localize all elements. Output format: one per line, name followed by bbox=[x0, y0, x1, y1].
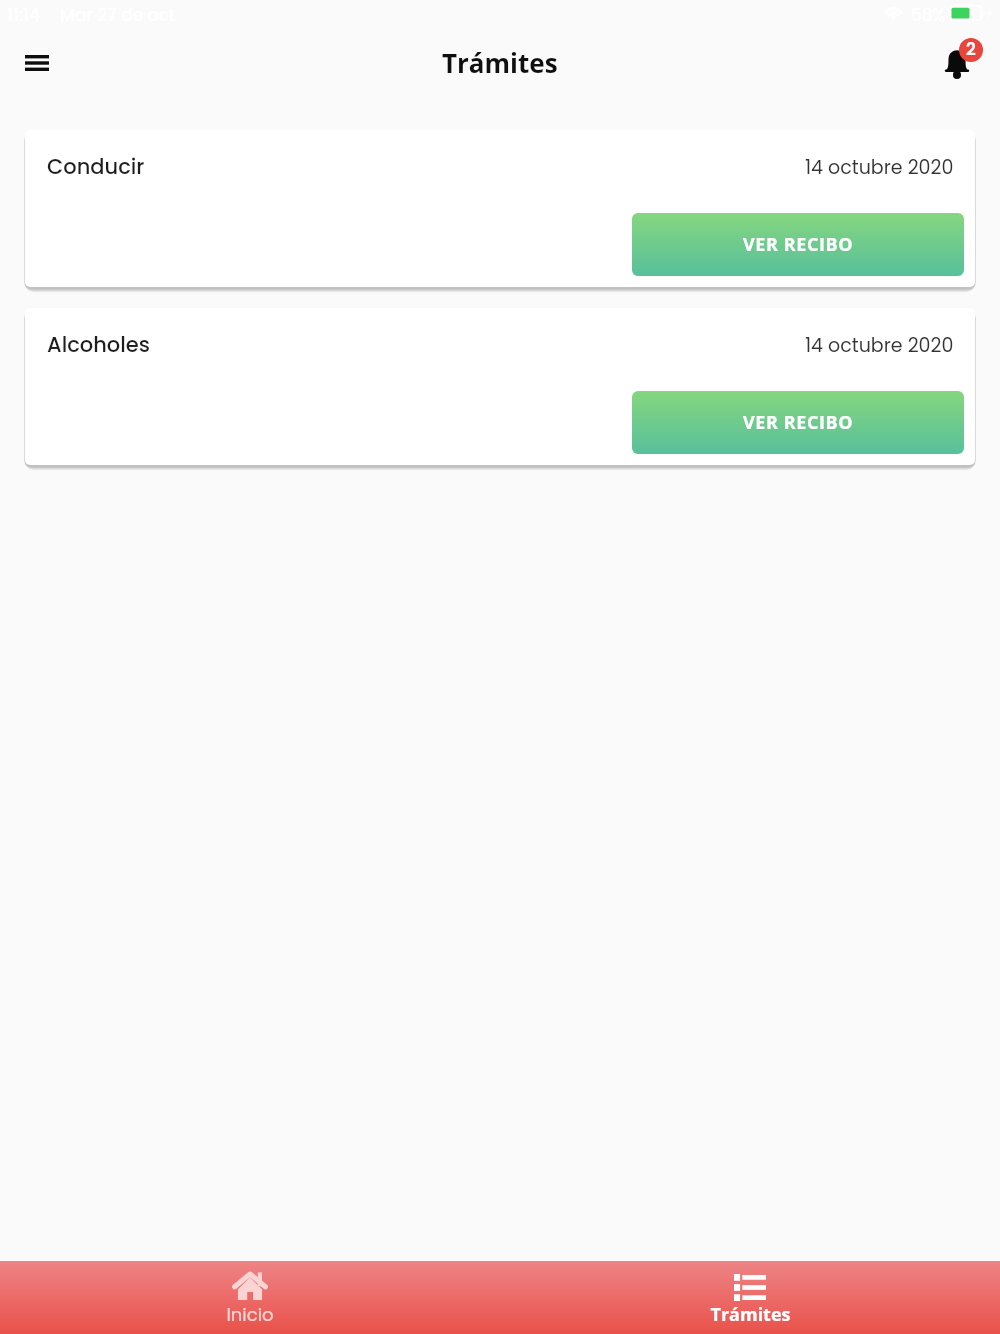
staticText: Conducir bbox=[47, 152, 145, 181]
button[interactable]: Inicio bbox=[0, 1261, 500, 1334]
staticText: VER RECIBO bbox=[743, 410, 854, 435]
staticText: Trámites bbox=[710, 1302, 791, 1327]
button[interactable]: Notifications bbox=[936, 34, 988, 82]
staticText: 14 octubre 2020 bbox=[805, 154, 954, 181]
button[interactable]: Alcoholes bbox=[25, 308, 975, 465]
button[interactable]: Conducir bbox=[25, 130, 975, 287]
staticText: Trámites bbox=[442, 45, 558, 80]
staticText: 14 octubre 2020 bbox=[805, 332, 954, 359]
staticText: Inicio bbox=[226, 1302, 274, 1327]
button[interactable]: VER RECIBO bbox=[632, 213, 964, 276]
staticText: VER RECIBO bbox=[743, 232, 854, 257]
staticText: Alcoholes bbox=[47, 330, 150, 359]
staticText: 2 bbox=[966, 38, 976, 61]
button[interactable]: Trámites bbox=[500, 1261, 1000, 1334]
button[interactable]: Menu bbox=[5, 35, 69, 91]
button[interactable]: VER RECIBO bbox=[632, 391, 964, 454]
